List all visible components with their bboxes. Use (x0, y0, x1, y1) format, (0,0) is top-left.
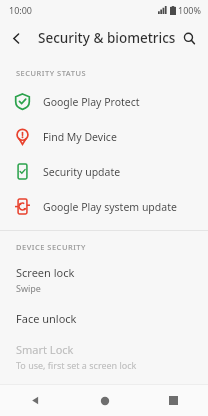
staticText: Security & biometrics (38, 29, 176, 47)
staticText: SECURITY STATUS (16, 68, 87, 78)
staticText: Swipe (16, 282, 41, 294)
staticText: Google Play Protect (43, 95, 140, 109)
staticText: Security update (43, 165, 121, 179)
staticText: DEVICE SECURITY (16, 242, 86, 252)
button[interactable]: Recent apps (139, 385, 208, 416)
button[interactable]: Home (70, 385, 139, 416)
staticText: Screen lock (16, 265, 75, 280)
button[interactable]: Google Play Protect (0, 84, 208, 119)
staticText: 10:00 (9, 4, 33, 16)
button[interactable]: Screen lock (0, 258, 208, 301)
button[interactable]: Face unlock (0, 301, 208, 335)
button[interactable]: Smart Lock (0, 335, 208, 378)
button[interactable]: Security update (0, 154, 208, 189)
button[interactable]: Back (0, 22, 32, 54)
button[interactable]: Back (0, 385, 70, 416)
staticText: Face unlock (16, 311, 77, 326)
staticText: Find My Device (43, 130, 117, 144)
staticText: 100% (178, 4, 201, 16)
staticText: Google Play system update (43, 200, 177, 214)
button[interactable]: Google Play system update (0, 189, 208, 224)
button[interactable]: Find My Device (0, 119, 208, 154)
staticText: Smart Lock (16, 342, 74, 357)
staticText: To use, first set a screen lock (16, 359, 137, 371)
button[interactable]: Search (174, 23, 204, 53)
